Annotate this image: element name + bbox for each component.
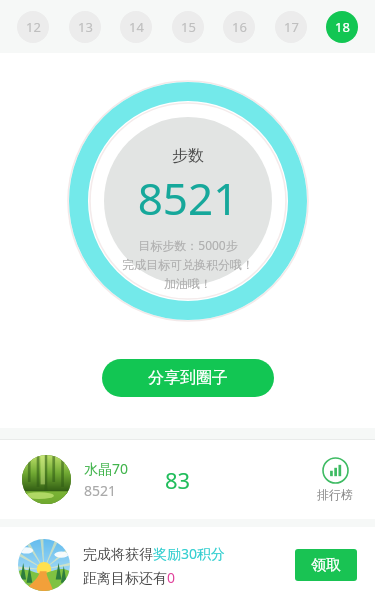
button[interactable]: 13 xyxy=(69,11,101,43)
button[interactable]: 14 xyxy=(120,11,152,43)
button[interactable]: 16 xyxy=(223,11,255,43)
staticText: 14 xyxy=(129,18,144,36)
staticText: 分享到圈子 xyxy=(148,368,228,388)
button[interactable]: 分享到圈子 xyxy=(102,359,274,397)
staticText: 完成将获得奖励30积分 xyxy=(83,544,226,563)
button[interactable]: 12 xyxy=(17,11,49,43)
staticText: 83 xyxy=(165,465,191,495)
staticText: 距离目标还有0 xyxy=(83,568,176,587)
staticText: 水晶70 xyxy=(84,459,129,478)
staticText: 加油哦！ xyxy=(93,276,283,291)
staticText: 18 xyxy=(335,18,350,36)
button[interactable]: 17 xyxy=(275,11,307,43)
button[interactable]: 排行榜 xyxy=(317,457,353,502)
staticText: 8521 xyxy=(93,168,283,228)
staticText: 13 xyxy=(78,18,93,36)
staticText: 17 xyxy=(284,18,299,36)
staticText: 目标步数：5000步 xyxy=(93,237,283,253)
staticText: 15 xyxy=(181,18,196,36)
button[interactable]: 18 xyxy=(326,11,358,43)
button[interactable]: 领取 xyxy=(295,549,357,581)
staticText: 8521 xyxy=(84,481,117,500)
staticText: 16 xyxy=(232,18,247,36)
button[interactable]: 水晶70 xyxy=(0,440,375,519)
staticText: 12 xyxy=(26,18,41,36)
staticText: 步数 xyxy=(93,146,283,166)
staticText: 排行榜 xyxy=(317,487,353,502)
staticText: 领取 xyxy=(311,556,341,575)
button[interactable]: 15 xyxy=(172,11,204,43)
staticText: 完成目标可兑换积分哦！ xyxy=(93,257,283,272)
